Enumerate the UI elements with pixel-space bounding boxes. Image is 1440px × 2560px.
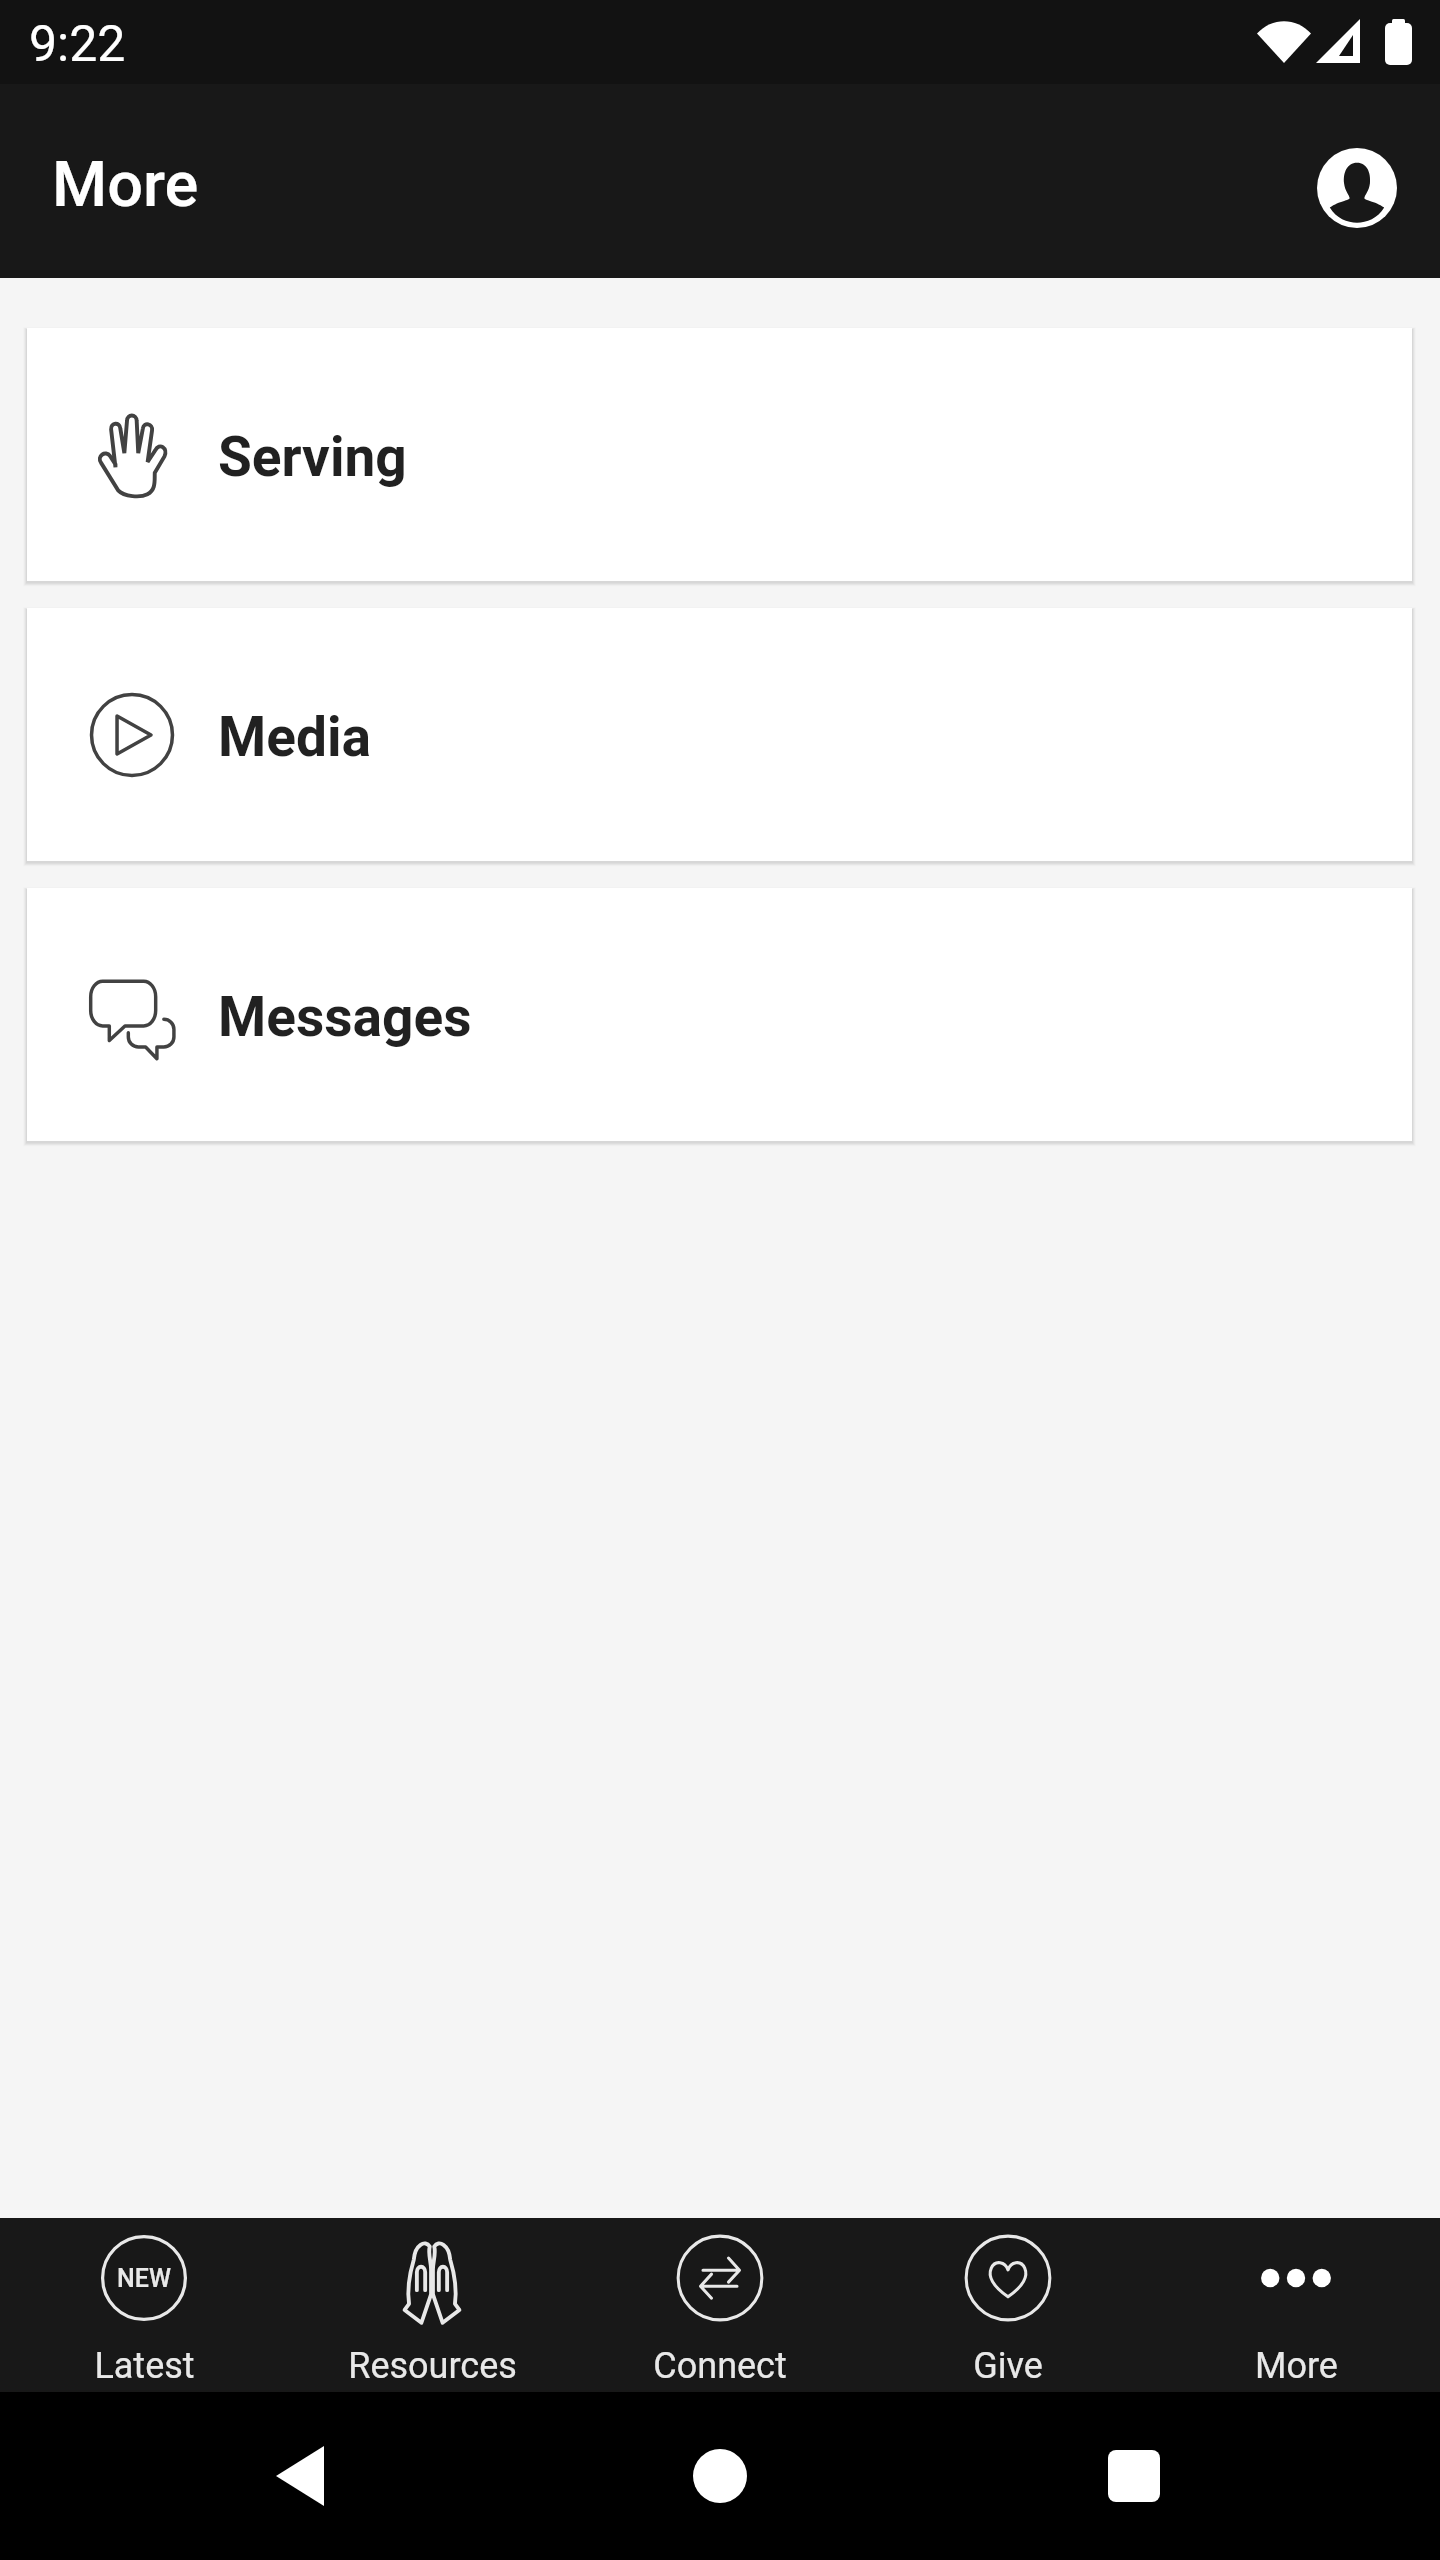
staticText: More bbox=[52, 148, 199, 222]
staticText: Give bbox=[973, 2345, 1043, 2387]
button[interactable]: Profile bbox=[1309, 140, 1405, 236]
button[interactable]: Media bbox=[27, 608, 1412, 861]
staticText: Connect bbox=[653, 2345, 787, 2387]
staticText: NEW bbox=[117, 2264, 171, 2293]
button[interactable]: Resources bbox=[288, 2218, 576, 2392]
button[interactable]: Connect bbox=[576, 2218, 864, 2392]
other: System navigation bbox=[0, 2392, 1440, 2560]
button[interactable]: Give bbox=[864, 2218, 1152, 2392]
button[interactable]: Messages bbox=[27, 888, 1412, 1141]
staticText: More bbox=[1255, 2345, 1338, 2387]
staticText: Resources bbox=[348, 2345, 517, 2387]
button[interactable]: Serving bbox=[27, 328, 1412, 581]
staticText: Media bbox=[218, 705, 371, 769]
staticText: 9:22 bbox=[29, 15, 126, 74]
staticText: Latest bbox=[94, 2345, 195, 2387]
button[interactable]: More bbox=[1152, 2218, 1440, 2392]
staticText: Serving bbox=[218, 425, 407, 489]
button[interactable]: NEW bbox=[0, 2218, 288, 2392]
staticText: Messages bbox=[218, 985, 472, 1049]
